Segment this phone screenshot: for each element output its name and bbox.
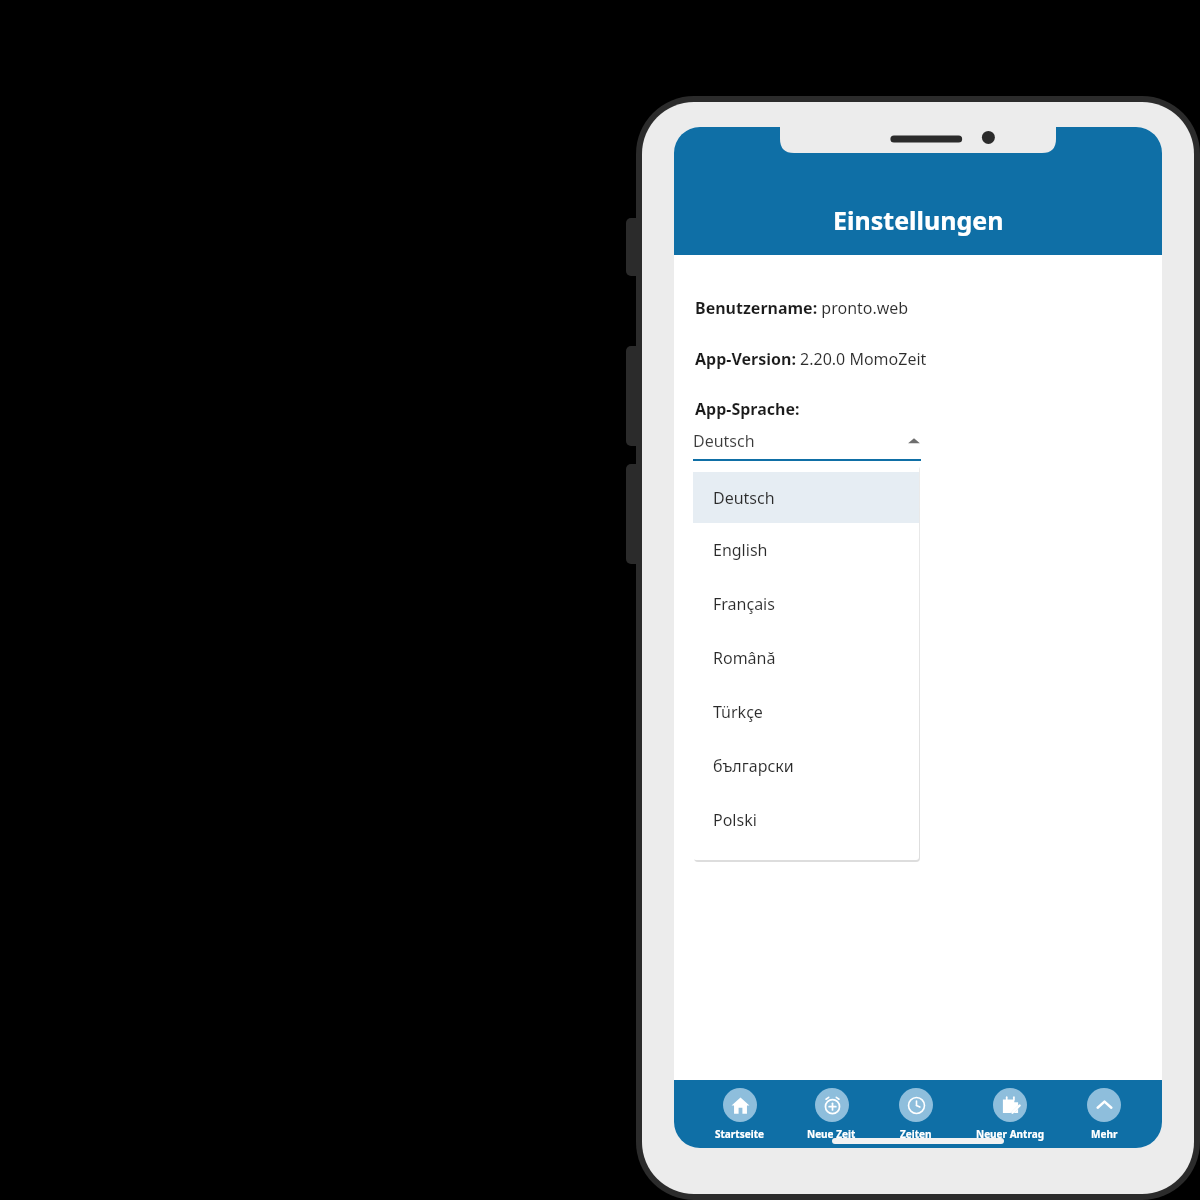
other: Zeiten (907, 1096, 926, 1115)
staticText: English (713, 539, 768, 561)
staticText: Zeiten (900, 1127, 932, 1141)
staticText: Deutsch (713, 487, 775, 509)
staticText: Deutsch (693, 430, 755, 452)
staticText: Einstellungen (833, 203, 1004, 237)
staticText: Français (713, 593, 775, 615)
other: Neuer Antrag (1001, 1096, 1020, 1115)
staticText: Polski (713, 809, 757, 831)
button[interactable]: Startseite (713, 1088, 766, 1141)
button[interactable]: Deutsch (693, 472, 919, 523)
button[interactable]: Français (693, 577, 919, 631)
button[interactable]: Neue Zeit (805, 1088, 858, 1141)
button[interactable]: English (693, 523, 919, 577)
button[interactable]: Neuer Antrag (974, 1088, 1046, 1141)
button[interactable]: Türkçe (693, 685, 919, 739)
staticText: Mehr (1091, 1127, 1118, 1141)
staticText: Neuer Antrag (976, 1127, 1044, 1141)
other: Neue Zeit (823, 1096, 842, 1115)
button[interactable]: Zeiten (897, 1088, 935, 1141)
staticText: Neue Zeit (807, 1127, 856, 1141)
button[interactable]: Română (693, 631, 919, 685)
button[interactable]: Polski (693, 793, 919, 847)
button[interactable]: Deutsch (693, 430, 921, 452)
button[interactable]: Mehr (1085, 1088, 1123, 1141)
staticText: български (713, 755, 794, 777)
staticText: App-Sprache: (695, 398, 800, 420)
staticText: Benutzername: pronto.web (695, 297, 909, 319)
other: Mehr (1095, 1096, 1114, 1115)
staticText: Türkçe (713, 701, 763, 723)
staticText: Startseite (715, 1127, 764, 1141)
staticText: Română (713, 647, 776, 669)
button[interactable]: български (693, 739, 919, 793)
staticText: App-Version: 2.20.0 MomoZeit (695, 348, 927, 370)
other: Startseite (731, 1096, 750, 1115)
